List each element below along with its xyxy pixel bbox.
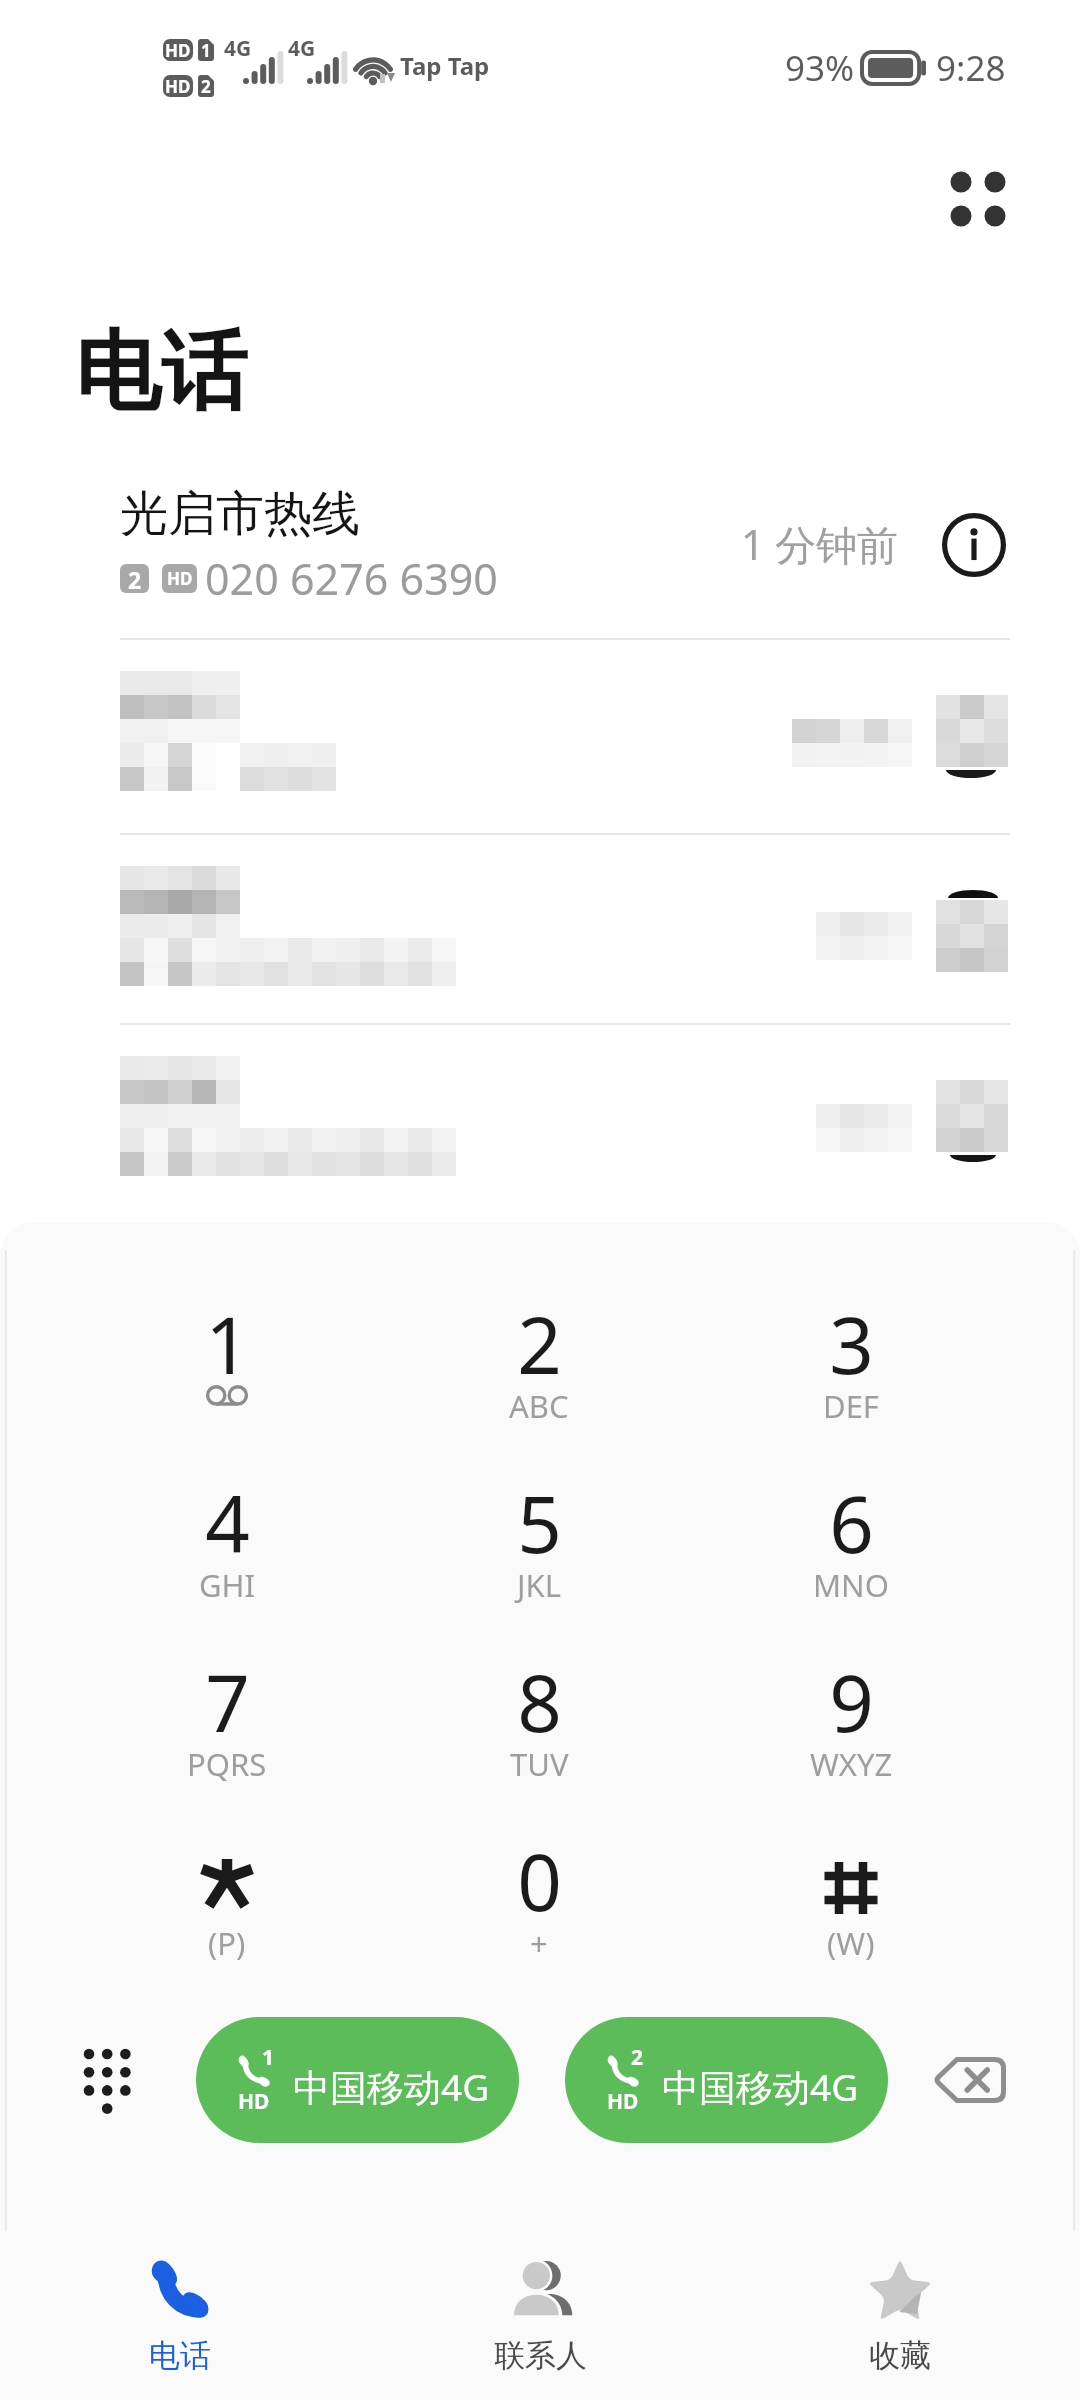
button[interactable]: 光启市热线: [0, 460, 1080, 638]
button[interactable]: 9: [711, 1618, 991, 1796]
staticText: 7: [205, 1649, 250, 1755]
staticText: 4G: [288, 34, 316, 63]
staticText: ABC: [509, 1385, 569, 1427]
staticText: 2: [128, 564, 142, 593]
button[interactable]: 6: [711, 1439, 991, 1617]
staticText: 1: [201, 39, 211, 61]
staticText: 9:28: [936, 44, 1006, 92]
button[interactable]: 1: [87, 1260, 367, 1438]
staticText: 联系人: [494, 2336, 587, 2375]
button[interactable]: Delete: [905, 2017, 1035, 2143]
staticText: 020 6276 6390: [205, 549, 498, 608]
button[interactable]: 7: [87, 1618, 367, 1796]
button[interactable]: (W): [711, 1797, 991, 1975]
staticText: 中国移动4G: [662, 2061, 859, 2112]
staticText: GHI: [199, 1564, 256, 1606]
staticText: TUV: [510, 1743, 569, 1785]
staticText: HD: [607, 2087, 639, 2116]
staticText: HD: [238, 2087, 270, 2116]
button[interactable]: 1: [196, 2017, 519, 2143]
button[interactable]: 3: [711, 1260, 991, 1438]
staticText: 电话: [75, 318, 247, 426]
staticText: 93%: [785, 44, 855, 92]
staticText: PQRS: [187, 1743, 267, 1785]
button[interactable]: 2: [399, 1260, 679, 1438]
staticText: HD: [165, 75, 191, 97]
staticText: 收藏: [869, 2336, 931, 2375]
staticText: HD: [165, 39, 191, 61]
staticText: (W): [827, 1922, 875, 1964]
button[interactable]: Call details: [933, 504, 1015, 586]
staticText: JKL: [517, 1564, 561, 1606]
button[interactable]: 联系人: [360, 2231, 720, 2400]
staticText: 1: [205, 1291, 250, 1397]
button[interactable]: 2: [565, 2017, 888, 2143]
staticText: 4G: [224, 34, 252, 63]
button[interactable]: (P): [87, 1797, 367, 1975]
staticText: 1 分钟前: [741, 516, 899, 572]
button[interactable]: 0: [399, 1797, 679, 1975]
staticText: 中国移动4G: [293, 2061, 490, 2112]
staticText: 5: [517, 1470, 562, 1576]
staticText: DEF: [823, 1385, 879, 1427]
staticText: 电话: [149, 2336, 211, 2375]
staticText: 2: [517, 1291, 562, 1397]
button[interactable]: 电话: [0, 2231, 360, 2400]
staticText: MNO: [813, 1564, 889, 1606]
staticText: 2: [201, 75, 211, 97]
staticText: 3: [829, 1291, 874, 1397]
staticText: 9: [829, 1649, 874, 1755]
button[interactable]: 8: [399, 1618, 679, 1796]
staticText: 1: [262, 2043, 275, 2072]
staticText: Tap Tap: [400, 49, 490, 82]
staticText: 8: [517, 1649, 562, 1755]
staticText: WXYZ: [810, 1743, 893, 1785]
button[interactable]: 5: [399, 1439, 679, 1617]
button[interactable]: 4: [87, 1439, 367, 1617]
staticText: 4: [205, 1470, 250, 1576]
staticText: 0: [517, 1828, 562, 1934]
staticText: HD: [167, 567, 193, 590]
staticText: 光启市热线: [120, 484, 360, 544]
staticText: +: [530, 1922, 548, 1964]
button[interactable]: 收藏: [720, 2231, 1080, 2400]
staticText: 6: [829, 1470, 874, 1576]
staticText: 2: [631, 2043, 644, 2072]
staticText: (P): [208, 1922, 246, 1964]
button[interactable]: More options: [912, 134, 1032, 254]
button[interactable]: Keypad: [48, 2022, 178, 2148]
